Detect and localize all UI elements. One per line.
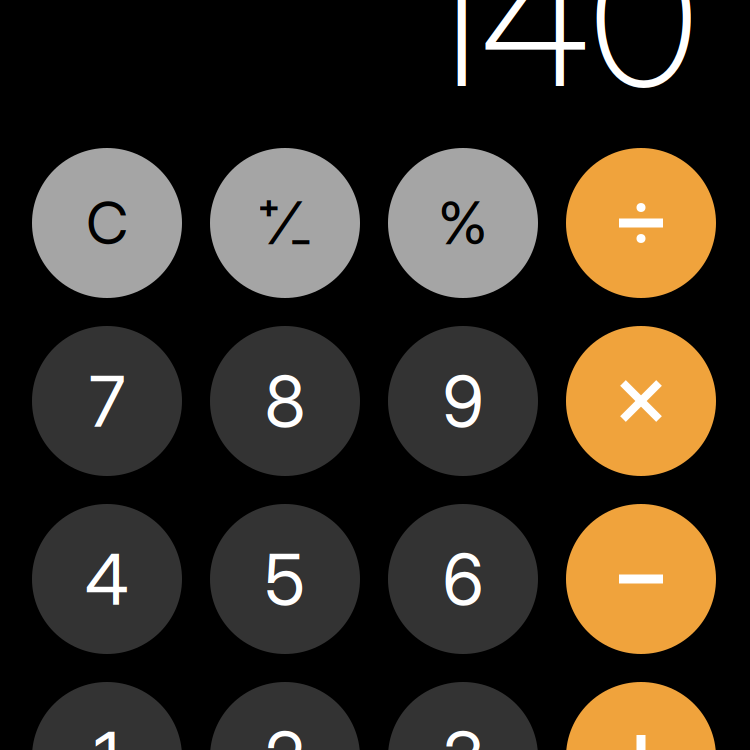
button[interactable]: 3 [388,682,538,750]
button[interactable]: 7 [32,326,182,476]
staticText: 8 [264,358,305,444]
staticText: 2 [265,714,305,750]
staticText: 140 [420,0,697,131]
staticText: C [86,187,128,258]
button[interactable]: Plus Minus [210,148,360,298]
staticText: 7 [89,358,125,444]
button[interactable]: 2 [210,682,360,750]
button[interactable]: Percent [388,148,538,298]
button[interactable]: Subtract [566,504,716,654]
button[interactable]: 5 [210,504,360,654]
button[interactable]: 8 [210,326,360,476]
button[interactable]: Divide [566,148,716,298]
button[interactable]: 1 [32,682,182,750]
staticText: 9 [442,358,483,444]
button[interactable]: 6 [388,504,538,654]
staticText: ⁺⁄₋ [256,187,313,258]
button[interactable]: Multiply [566,326,716,476]
staticText: 5 [264,536,305,622]
staticText: 6 [442,536,483,622]
staticText: % [438,187,488,258]
button[interactable]: Clear [32,148,182,298]
button[interactable]: 9 [388,326,538,476]
button[interactable]: 4 [32,504,182,654]
staticText: 4 [85,536,129,622]
staticText: 3 [442,714,484,750]
staticText: 1 [94,714,120,750]
button[interactable]: Add [566,682,716,750]
